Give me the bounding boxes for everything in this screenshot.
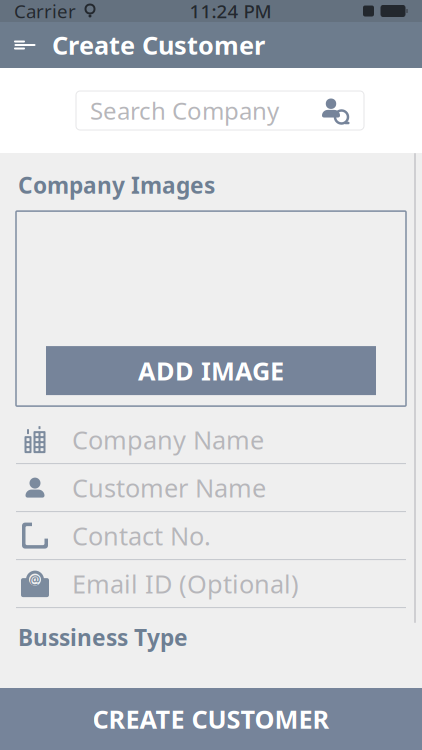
button[interactable]: CREATE CUSTOMER (0, 688, 422, 750)
staticText: Carrier (14, 0, 76, 23)
staticText: CREATE CUSTOMER (92, 702, 329, 736)
staticText: Email ID (Optional) (72, 567, 299, 600)
button[interactable]: Back (0, 22, 50, 68)
button[interactable]: Customer Name (0, 464, 422, 512)
button[interactable]: @ (0, 560, 422, 608)
button[interactable]: Search customer (304, 86, 364, 134)
staticText: 11:24 PM (189, 0, 271, 23)
staticText: ADD IMAGE (138, 354, 284, 387)
staticText: Company Name (72, 423, 264, 456)
staticText: Contact No. (72, 519, 211, 552)
staticText: Bussiness Type (18, 622, 188, 652)
staticText: @ (29, 572, 40, 587)
staticText: Search Company (90, 95, 279, 126)
staticText: Create Customer (52, 28, 265, 62)
staticText: Company Images (18, 170, 215, 200)
button[interactable]: ADD IMAGE (46, 346, 376, 395)
button[interactable]: Company Name (0, 416, 422, 464)
staticText: Customer Name (72, 471, 266, 504)
button[interactable]: Contact No. (0, 512, 422, 560)
